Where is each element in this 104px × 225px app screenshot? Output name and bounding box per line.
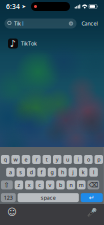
staticText: p bbox=[97, 156, 100, 163]
button[interactable]: ↵ bbox=[81, 193, 103, 202]
button[interactable]: Dictation bbox=[87, 207, 97, 217]
staticText: Cancel bbox=[81, 20, 97, 27]
button[interactable]: j bbox=[68, 168, 77, 177]
staticText: j bbox=[72, 169, 73, 176]
staticText: n bbox=[69, 181, 72, 188]
button[interactable]: k bbox=[79, 168, 87, 177]
button[interactable]: q bbox=[1, 155, 9, 164]
button[interactable]: s bbox=[17, 168, 25, 177]
button[interactable]: ⇧ bbox=[1, 180, 13, 189]
staticText: space bbox=[41, 194, 56, 201]
staticText: ➤ bbox=[21, 3, 25, 10]
button[interactable]: ⌫ bbox=[87, 180, 99, 189]
button[interactable]: u bbox=[63, 155, 72, 164]
staticText: r bbox=[35, 156, 37, 163]
staticText: m bbox=[79, 181, 84, 188]
staticText: 6:34 bbox=[6, 2, 20, 11]
button[interactable]: d bbox=[27, 168, 35, 177]
button[interactable]: e bbox=[22, 155, 30, 164]
staticText: g bbox=[50, 169, 53, 176]
staticText: x bbox=[28, 181, 31, 188]
button[interactable]: z bbox=[15, 180, 23, 189]
button[interactable]: Cancel bbox=[76, 18, 102, 28]
button[interactable]: t bbox=[43, 155, 51, 164]
staticText: l bbox=[93, 169, 94, 176]
staticText: 123 bbox=[4, 194, 13, 201]
staticText: t bbox=[46, 156, 48, 163]
staticText: s bbox=[19, 169, 22, 176]
staticText: b bbox=[59, 181, 62, 188]
button[interactable]: y bbox=[53, 155, 61, 164]
staticText: 🎤 bbox=[87, 207, 97, 216]
button[interactable]: ♪ bbox=[0, 28, 104, 48]
button[interactable]: r bbox=[32, 155, 41, 164]
button[interactable]: p bbox=[95, 155, 103, 164]
staticText: ☺ bbox=[7, 207, 17, 217]
button[interactable]: l bbox=[89, 168, 98, 177]
staticText: e bbox=[24, 156, 27, 163]
staticText: w bbox=[14, 156, 18, 163]
staticText: TikTok bbox=[21, 40, 37, 47]
staticText: ⇧ bbox=[4, 181, 10, 189]
staticText: o bbox=[87, 156, 90, 163]
staticText: c bbox=[38, 181, 41, 188]
button[interactable]: h bbox=[58, 168, 67, 177]
staticText: v bbox=[49, 181, 52, 188]
button[interactable]: g bbox=[48, 168, 56, 177]
button[interactable]: 123 bbox=[1, 193, 16, 202]
button[interactable]: f bbox=[37, 168, 46, 177]
staticText: ↵ bbox=[89, 194, 95, 201]
button[interactable]: v bbox=[46, 180, 54, 189]
button[interactable]: x bbox=[25, 180, 34, 189]
button[interactable]: c bbox=[35, 180, 44, 189]
button[interactable]: o bbox=[84, 155, 93, 164]
staticText: f bbox=[41, 169, 43, 176]
staticText: × bbox=[70, 21, 72, 26]
button[interactable]: space bbox=[18, 193, 79, 202]
button[interactable]: w bbox=[11, 155, 20, 164]
staticText: h bbox=[61, 169, 64, 176]
button[interactable]: a bbox=[6, 168, 15, 177]
button[interactable]: i bbox=[74, 155, 82, 164]
staticText: y bbox=[56, 156, 59, 163]
staticText: d bbox=[30, 169, 33, 176]
button[interactable]: b bbox=[56, 180, 65, 189]
staticText: q bbox=[4, 156, 7, 163]
button[interactable]: n bbox=[67, 180, 75, 189]
staticText: ♪ bbox=[10, 38, 16, 49]
staticText: a bbox=[9, 169, 12, 176]
staticText: ⌫ bbox=[89, 181, 98, 189]
button[interactable]: m bbox=[77, 180, 85, 189]
staticText: u bbox=[66, 156, 69, 163]
staticText: Tik bbox=[14, 20, 21, 27]
staticText: z bbox=[17, 181, 20, 188]
button[interactable]: Tik bbox=[4, 18, 76, 28]
button[interactable]: Emoji keyboard bbox=[7, 207, 17, 217]
staticText: k bbox=[82, 169, 85, 176]
